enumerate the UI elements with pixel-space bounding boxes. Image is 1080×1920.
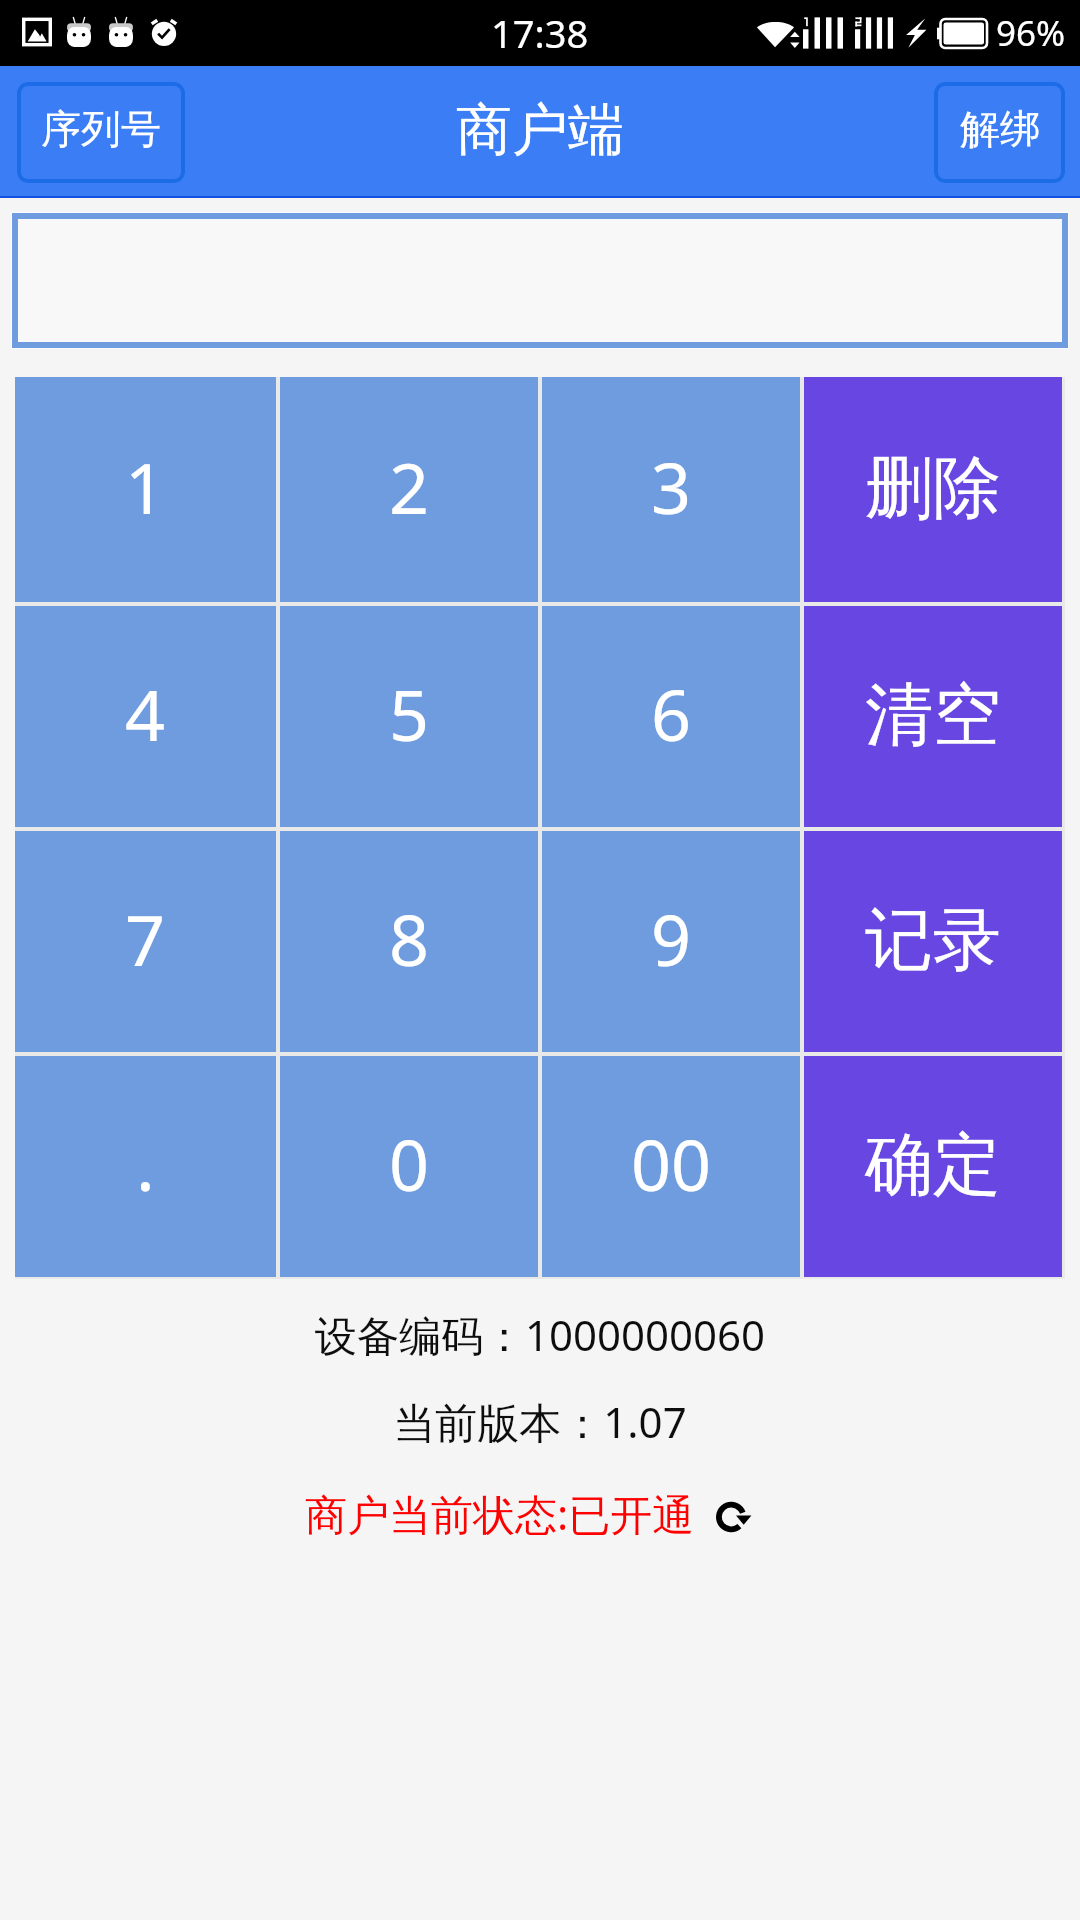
button[interactable]: 记录	[804, 831, 1062, 1052]
staticText: 序列号	[41, 104, 161, 154]
button[interactable]: 7	[15, 831, 276, 1052]
staticText: 17:38	[491, 7, 589, 59]
button[interactable]: 6	[542, 606, 800, 827]
staticText: .	[136, 1116, 155, 1211]
staticText: 当前版本：1.07	[0, 1393, 1080, 1450]
staticText: 3	[651, 439, 692, 534]
staticText: 7	[125, 891, 166, 986]
button[interactable]: Refresh status	[710, 1491, 762, 1543]
staticText: 4	[125, 666, 166, 761]
staticText: 96%	[996, 9, 1066, 57]
staticText: 5	[389, 666, 430, 761]
button[interactable]: 1	[15, 377, 276, 602]
staticText: 商户当前状态:已开通	[305, 1485, 695, 1542]
button[interactable]: 00	[542, 1056, 800, 1277]
button[interactable]	[12, 213, 1068, 348]
staticText: 清空	[865, 673, 1001, 759]
button[interactable]: 3	[542, 377, 800, 602]
staticText: 0	[389, 1116, 430, 1211]
staticText: 2	[389, 439, 430, 534]
staticText: 记录	[865, 898, 1001, 984]
button[interactable]: 0	[280, 1056, 538, 1277]
staticText: 确定	[865, 1123, 1001, 1209]
staticText: 1	[125, 439, 166, 534]
button[interactable]: 删除	[804, 377, 1062, 602]
button[interactable]: 解绑	[934, 82, 1065, 183]
button[interactable]: 9	[542, 831, 800, 1052]
staticText: 商户端	[456, 95, 624, 166]
staticText: 设备编码：1000000060	[0, 1306, 1080, 1363]
staticText: 6	[651, 666, 692, 761]
button[interactable]: 确定	[804, 1056, 1062, 1277]
button[interactable]: 2	[280, 377, 538, 602]
staticText: 删除	[865, 446, 1001, 532]
staticText: 解绑	[960, 104, 1040, 154]
staticText: 8	[389, 891, 430, 986]
staticText: 9	[651, 891, 692, 986]
button[interactable]: 8	[280, 831, 538, 1052]
button[interactable]: .	[15, 1056, 276, 1277]
button[interactable]: 5	[280, 606, 538, 827]
button[interactable]: 清空	[804, 606, 1062, 827]
button[interactable]: 4	[15, 606, 276, 827]
button[interactable]: 序列号	[17, 82, 185, 183]
staticText: 00	[631, 1116, 712, 1211]
